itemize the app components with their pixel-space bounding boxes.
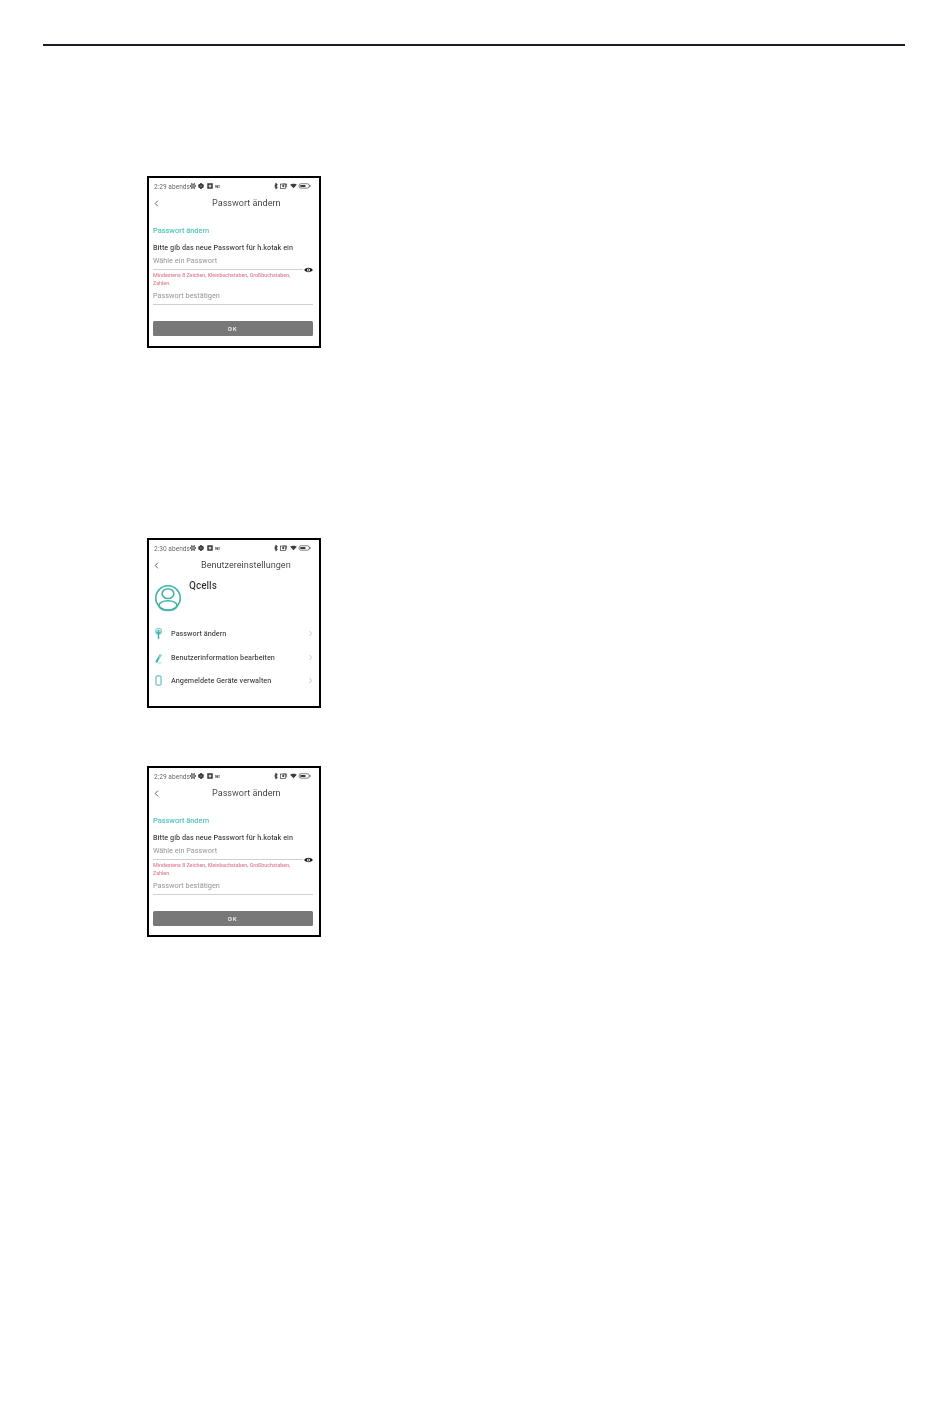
- staticText: Passwort ändern: [171, 629, 227, 638]
- staticText: Mindestens 8 Zeichen, Kleinbuchstaben, G…: [153, 272, 294, 286]
- staticText: Qcells: [189, 580, 217, 592]
- staticText: Passwort ändern: [153, 816, 210, 825]
- staticText: 2:29 abends: [154, 183, 190, 191]
- staticText: Wähle ein Passwort: [153, 256, 218, 265]
- staticText: OK: [228, 326, 238, 332]
- button[interactable]: Show password: [302, 854, 314, 866]
- button[interactable]: Back: [150, 787, 162, 799]
- button[interactable]: OK: [153, 911, 313, 926]
- button[interactable]: Passwort bestätigen: [153, 879, 313, 895]
- staticText: OK: [228, 916, 238, 922]
- staticText: Bitte gib das neue Passwort für h.kotak …: [153, 833, 294, 842]
- button[interactable]: Wähle ein Passwort: [153, 254, 303, 270]
- staticText: 2:30 abends: [154, 545, 190, 553]
- button[interactable]: Back: [150, 559, 162, 571]
- button[interactable]: Passwort ändern: [148, 624, 320, 642]
- staticText: Passwort bestätigen: [153, 881, 220, 890]
- staticText: Passwort ändern: [153, 226, 210, 235]
- button[interactable]: Angemeldete Geräte verwalten: [148, 671, 320, 689]
- button[interactable]: OK: [153, 321, 313, 336]
- staticText: Passwort ändern: [212, 198, 281, 209]
- button[interactable]: Benutzerinformation bearbeiten: [148, 648, 320, 666]
- staticText: Angemeldete Geräte verwalten: [171, 676, 272, 685]
- staticText: Wähle ein Passwort: [153, 846, 218, 855]
- staticText: Benutzereinstellungen: [201, 560, 291, 571]
- staticText: Benutzerinformation bearbeiten: [171, 653, 275, 662]
- staticText: Bitte gib das neue Passwort für h.kotak …: [153, 243, 294, 252]
- staticText: Passwort bestätigen: [153, 291, 220, 300]
- button[interactable]: Passwort bestätigen: [153, 289, 313, 305]
- staticText: 2:29 abends: [154, 773, 190, 781]
- button[interactable]: Show password: [302, 264, 314, 276]
- button[interactable]: Wähle ein Passwort: [153, 844, 303, 860]
- staticText: Passwort ändern: [212, 788, 281, 799]
- button[interactable]: Back: [150, 197, 162, 209]
- staticText: Mindestens 8 Zeichen, Kleinbuchstaben, G…: [153, 862, 294, 876]
